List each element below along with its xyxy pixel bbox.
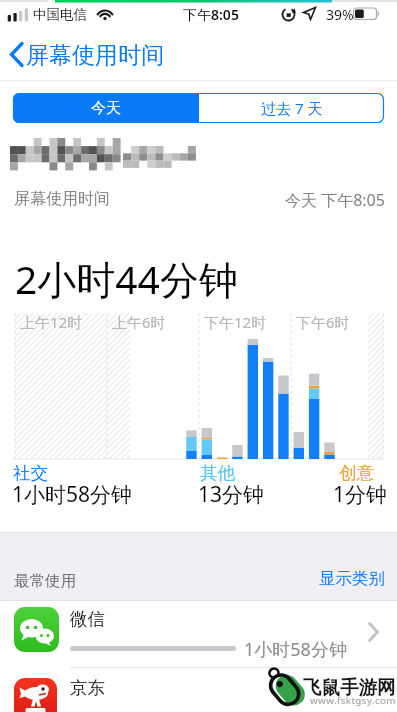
staticText: 中国电信 (33, 6, 87, 23)
staticText: 下午12时 (204, 312, 267, 332)
staticText: 其他 (200, 462, 235, 484)
staticText: 1小时58分钟 (12, 480, 133, 509)
staticText: 2小时44分钟 (15, 252, 238, 305)
staticText: 上午6时 (112, 312, 166, 332)
staticText: 创意 (339, 462, 374, 484)
staticText: 最常使用 (14, 571, 76, 591)
button[interactable]: 过去 7 天 (199, 93, 384, 123)
button[interactable] (9, 42, 25, 68)
staticText: 飞鼠手游网 (303, 676, 396, 699)
staticText: 下午6时 (296, 312, 350, 332)
staticText: 屏幕使用时间 (14, 189, 110, 209)
staticText: 13分钟 (198, 480, 265, 509)
staticText: 屏幕使用时间 (26, 41, 164, 70)
staticText: 1分钟 (333, 480, 388, 509)
staticText: 今天 (91, 99, 121, 118)
staticText: 今天 下午8:05 (285, 189, 385, 211)
button[interactable]: 显示类别 (300, 566, 385, 590)
staticText: 过去 7 天 (261, 98, 323, 118)
staticText: 上午12时 (20, 312, 83, 332)
staticText: 39% (326, 5, 354, 24)
staticText: 微信 (70, 608, 105, 630)
staticText: www.fsktgsy.com (310, 694, 396, 707)
staticText: 1小时58分钟 (244, 637, 347, 662)
button[interactable]: 今天 (13, 93, 199, 123)
button[interactable] (0, 668, 397, 712)
staticText: 社交 (13, 462, 48, 484)
staticText: 下午8:05 (183, 5, 239, 24)
staticText: 京东 (70, 677, 105, 699)
button[interactable] (0, 601, 397, 667)
staticText: 显示类别 (319, 568, 385, 589)
